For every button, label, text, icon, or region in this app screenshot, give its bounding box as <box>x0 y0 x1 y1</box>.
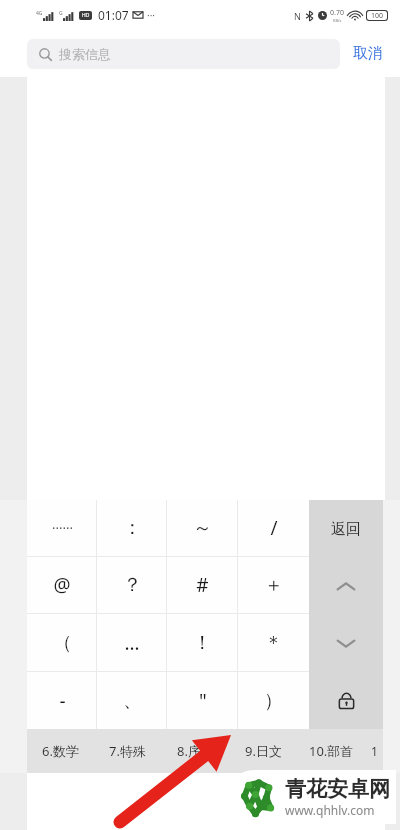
staticText: 8.序号 <box>177 742 214 760</box>
staticText: - <box>59 688 66 714</box>
button[interactable]: Shift up <box>309 558 383 615</box>
button[interactable]: 取消 <box>340 44 385 63</box>
button[interactable]: … <box>97 614 167 671</box>
staticText: 4G <box>36 10 43 17</box>
staticText: 青花安卓网 <box>285 776 390 802</box>
button[interactable]: - <box>27 672 97 729</box>
staticText: ！ <box>193 631 212 655</box>
button[interactable]: Chevron down <box>309 615 383 672</box>
staticText: / <box>270 515 278 541</box>
button[interactable]: 10.部首 <box>297 729 365 773</box>
staticText: ··· <box>147 8 156 22</box>
staticText: ？ <box>123 573 142 597</box>
button[interactable]: 、 <box>97 672 167 729</box>
staticText: 01:07 <box>98 7 129 23</box>
staticText: ＋ <box>264 573 283 597</box>
staticText: ） <box>264 689 283 713</box>
staticText: 6.数学 <box>42 742 79 760</box>
staticText: ： <box>123 516 142 540</box>
staticText: … <box>124 630 140 656</box>
button[interactable]: ······ <box>27 500 97 556</box>
staticText: 、 <box>123 689 142 713</box>
staticText: （ <box>53 631 72 655</box>
staticText: ······ <box>52 519 73 537</box>
staticText: ＊ <box>264 631 283 655</box>
button[interactable]: 返回 <box>309 500 383 558</box>
staticText: @ <box>53 572 71 598</box>
button[interactable]: ？ <box>97 557 167 613</box>
staticText: www.qhhlv.com <box>285 802 375 818</box>
button[interactable]: # <box>167 557 238 613</box>
button[interactable]: 7.特殊 <box>94 729 161 773</box>
button[interactable]: （ <box>27 614 97 671</box>
button[interactable]: ： <box>97 500 167 556</box>
staticText: # <box>196 572 209 598</box>
staticText: 返回 <box>331 520 361 539</box>
button[interactable]: ＋ <box>238 557 309 613</box>
staticText: 9.日文 <box>245 742 282 760</box>
staticText: 0.70 <box>330 8 344 18</box>
staticText: 10.部首 <box>309 742 354 760</box>
button[interactable]: ～ <box>167 500 238 556</box>
staticText: " <box>199 688 207 714</box>
staticText: 搜索信息 <box>59 46 111 62</box>
button[interactable]: 1 <box>365 729 383 773</box>
button[interactable]: 6.数学 <box>27 729 94 773</box>
staticText: HD <box>82 12 90 19</box>
staticText: 100 <box>371 11 384 20</box>
staticText: KB/s <box>333 18 342 23</box>
staticText: ～ <box>193 516 212 540</box>
button[interactable]: " <box>167 672 238 729</box>
button[interactable]: ＊ <box>238 614 309 671</box>
staticText: G <box>59 10 63 17</box>
button[interactable]: ！ <box>167 614 238 671</box>
button[interactable]: 8.序号 <box>161 729 229 773</box>
staticText: 1 <box>371 743 378 759</box>
button[interactable]: 9.日文 <box>229 729 297 773</box>
button[interactable]: 搜索信息 <box>27 39 340 69</box>
staticText: 取消 <box>353 44 383 63</box>
button[interactable]: / <box>238 500 309 556</box>
staticText: N <box>294 10 301 22</box>
button[interactable]: @ <box>27 557 97 613</box>
staticText: 7.特殊 <box>109 742 146 760</box>
button[interactable]: Lock <box>309 672 383 729</box>
button[interactable]: ） <box>238 672 309 729</box>
